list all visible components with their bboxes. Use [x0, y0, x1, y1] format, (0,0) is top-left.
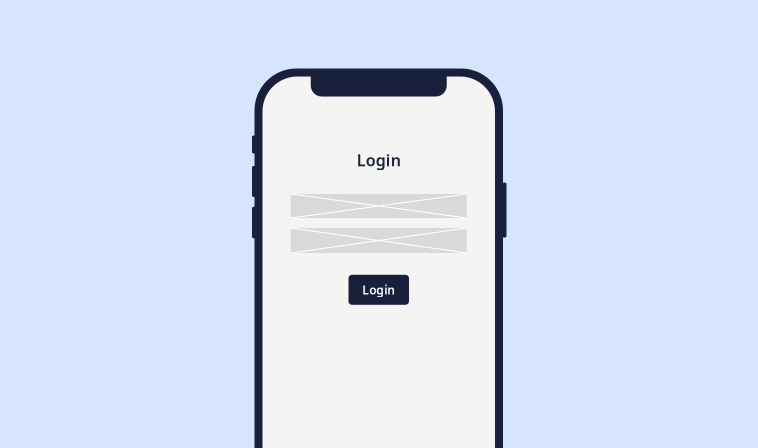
button[interactable]: Login: [348, 275, 409, 305]
button[interactable]: Password field: [291, 228, 467, 253]
staticText: Login: [357, 149, 401, 171]
button[interactable]: Username field: [291, 194, 467, 218]
staticText: Login: [362, 282, 395, 298]
